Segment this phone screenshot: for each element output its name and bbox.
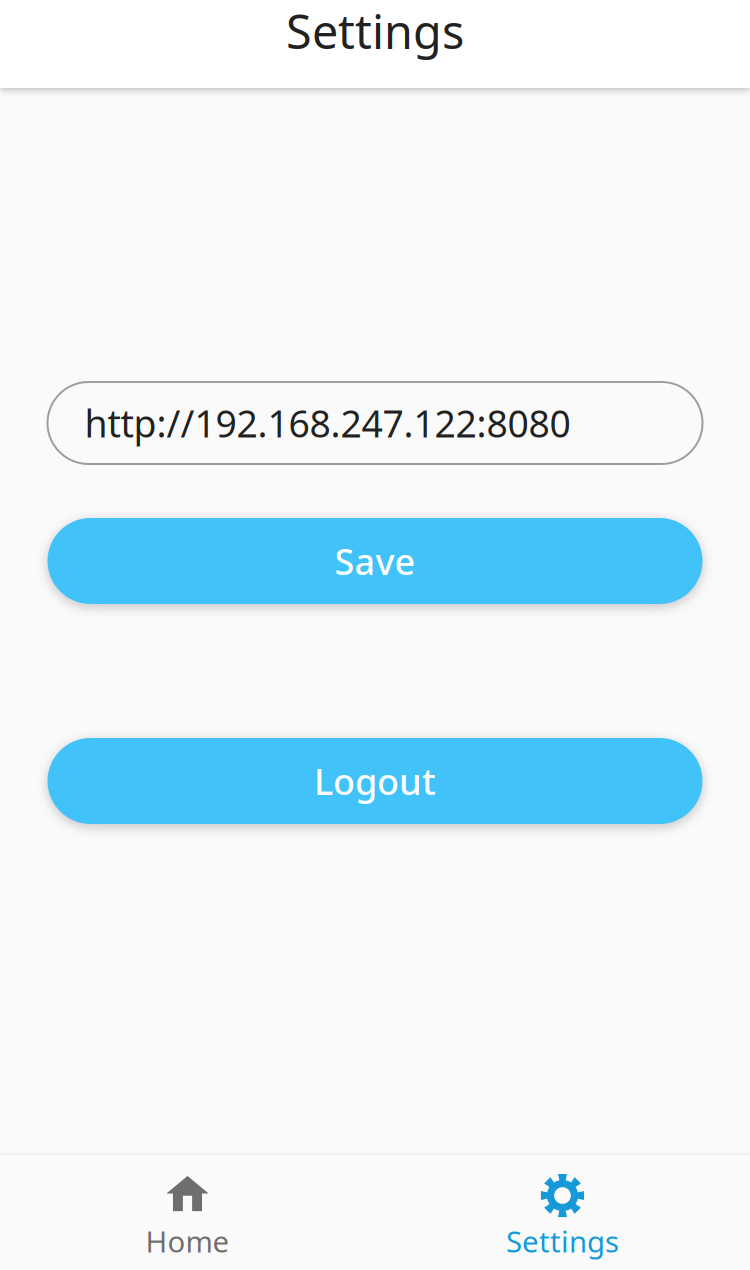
staticText: Home <box>145 1221 229 1260</box>
button[interactable]: Logout <box>47 738 702 824</box>
button[interactable]: Settings <box>375 1155 750 1270</box>
staticText: Settings <box>286 0 464 62</box>
button[interactable]: http://192.168.247.122:8080 <box>47 382 702 464</box>
staticText: Settings <box>506 1221 619 1260</box>
staticText: Save <box>334 537 415 585</box>
staticText: Logout <box>314 757 436 805</box>
button[interactable]: Save <box>47 518 702 604</box>
button[interactable]: Home <box>0 1155 375 1270</box>
staticText: http://192.168.247.122:8080 <box>84 398 570 448</box>
